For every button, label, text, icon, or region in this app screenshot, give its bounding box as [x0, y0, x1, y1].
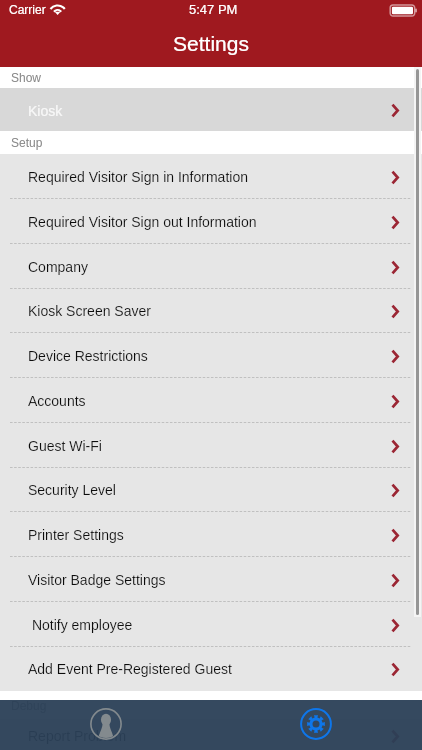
- staticText: Carrier: [9, 3, 46, 16]
- button[interactable]: Printer Settings: [0, 512, 422, 557]
- button[interactable]: Settings: [289, 699, 342, 749]
- button[interactable]: Profile: [79, 699, 132, 749]
- staticText: Accounts: [28, 393, 86, 409]
- staticText: Guest Wi-Fi: [28, 438, 102, 454]
- staticText: Add Event Pre-Registered Guest: [28, 661, 232, 677]
- button[interactable]: Company: [0, 244, 422, 289]
- button[interactable]: Report Problem: [0, 719, 422, 750]
- staticText: Printer Settings: [28, 527, 124, 543]
- staticText: Kiosk Screen Saver: [28, 303, 151, 319]
- staticText: 5:47 PM: [189, 2, 238, 17]
- button[interactable]: Kiosk Screen Saver: [0, 288, 422, 333]
- button[interactable]: Guest Wi-Fi: [0, 423, 422, 468]
- button[interactable]: Kiosk: [0, 88, 422, 131]
- staticText: Report Problem: [28, 728, 127, 744]
- staticText: Required Visitor Sign in Information: [28, 169, 248, 185]
- staticText: Show: [11, 71, 42, 84]
- staticText: Notify employee: [28, 617, 133, 633]
- staticText: Kiosk: [28, 103, 63, 119]
- button[interactable]: Security Level: [0, 467, 422, 512]
- button[interactable]: Required Visitor Sign in Information: [0, 154, 422, 199]
- button[interactable]: Device Restrictions: [0, 333, 422, 378]
- staticText: Security Level: [28, 482, 116, 498]
- staticText: Settings: [0, 32, 422, 55]
- button[interactable]: Accounts: [0, 378, 422, 423]
- button[interactable]: Required Visitor Sign out Information: [0, 199, 422, 244]
- button[interactable]: Add Event Pre-Registered Guest: [0, 646, 422, 691]
- button[interactable]: Visitor Badge Settings: [0, 557, 422, 602]
- button[interactable]: Notify employee: [0, 602, 422, 647]
- staticText: Required Visitor Sign out Information: [28, 214, 257, 230]
- staticText: Company: [28, 259, 88, 275]
- staticText: Device Restrictions: [28, 348, 148, 364]
- staticText: Debug: [11, 699, 47, 712]
- staticText: Setup: [11, 136, 43, 149]
- staticText: Visitor Badge Settings: [28, 572, 166, 588]
